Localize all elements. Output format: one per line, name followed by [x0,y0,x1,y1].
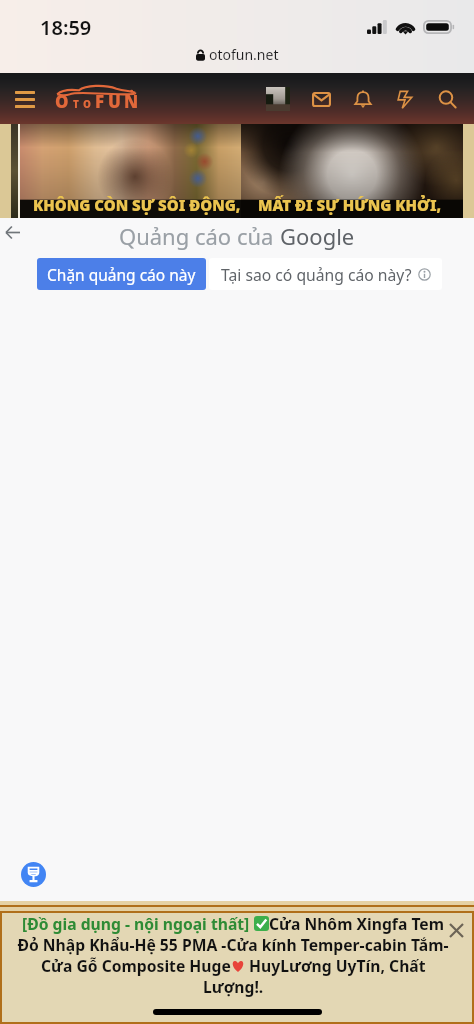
staticText: KHÔNG CÒN SỰ SÔI ĐỘNG, [33,195,241,215]
button[interactable]: Ad choices [21,862,46,887]
staticText: Google [280,221,355,251]
staticText: T [73,97,79,111]
staticText: Đỏ Nhập Khẩu-Hệ 55 PMA -Cửa kính Temper-… [17,934,449,955]
staticText: O [55,90,69,113]
staticText: U [108,90,121,113]
staticText: Cửa Gỗ Composite Huge [41,955,231,976]
staticText: Tại sao có quảng cáo này? [221,264,412,285]
button[interactable]: Notifications [350,86,376,112]
staticText: HuyLương UyTín, Chất [245,955,426,976]
staticText: Lượng!. [203,976,264,997]
button[interactable]: Search [434,86,460,112]
staticText: 18:59 [40,14,92,41]
staticText: O [83,97,91,111]
button[interactable]: Profile [266,87,290,111]
button[interactable]: Tại sao có quảng cáo này? [209,258,442,290]
button[interactable]: Chặn quảng cáo này [37,258,206,290]
button[interactable]: [Đồ gia dụng - nội ngoại thất] [0,901,474,1024]
staticText: N [124,90,139,113]
staticText: otofun.net [209,45,279,64]
staticText: Quảng cáo của [119,221,280,251]
button[interactable]: Messages [308,86,334,112]
button[interactable]: Alerts [392,86,418,112]
staticText: Cửa Nhôm Xingfa Tem [269,913,445,934]
button[interactable]: Back [1,220,25,244]
staticText: Chặn quảng cáo này [47,264,196,285]
button[interactable]: Menu [9,84,41,114]
staticText: MẤT ĐI SỰ HỨNG KHỞI, [258,195,442,215]
staticText: [Đồ gia dụng - nội ngoại thất] [22,913,254,934]
staticText: F [95,90,105,113]
button[interactable]: Close ad [446,920,466,940]
